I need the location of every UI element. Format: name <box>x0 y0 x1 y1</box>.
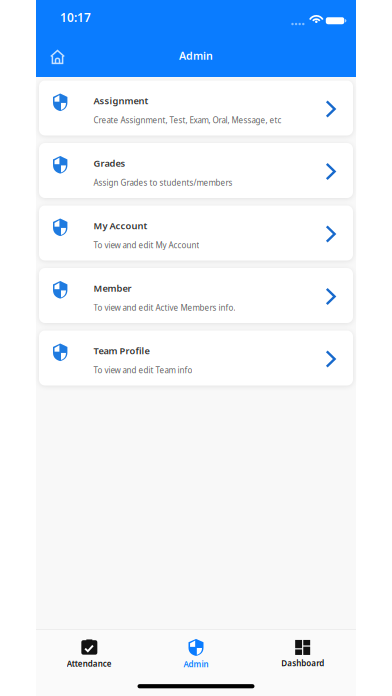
staticText: Team Profile <box>93 344 149 357</box>
staticText: To view and edit Team info <box>93 365 192 375</box>
button[interactable]: Grades <box>39 143 353 198</box>
button[interactable]: Assignment <box>39 80 353 135</box>
staticText: Admin <box>183 659 208 669</box>
staticText: Member <box>93 282 131 294</box>
button[interactable]: My Account <box>39 205 353 260</box>
staticText: Assignment <box>93 94 148 107</box>
staticText: Grades <box>93 157 125 169</box>
button[interactable]: Member <box>39 268 353 323</box>
button[interactable]: Attendance <box>36 630 143 675</box>
staticText: Assign Grades to students/members <box>93 177 232 188</box>
button[interactable]: Team Profile <box>39 330 353 385</box>
staticText: Admin <box>179 48 213 63</box>
staticText: Attendance <box>67 658 112 669</box>
staticText: Dashboard <box>281 658 324 668</box>
staticText: 10:17 <box>60 9 91 25</box>
button[interactable]: Admin <box>143 630 249 675</box>
staticText: My Account <box>93 219 147 232</box>
button[interactable]: Home <box>36 38 77 72</box>
staticText: To view and edit My Account <box>93 240 199 250</box>
staticText: Create Assignment, Test, Exam, Oral, Mes… <box>93 115 281 125</box>
button[interactable]: Dashboard <box>249 630 356 675</box>
staticText: To view and edit Active Members info. <box>93 302 235 313</box>
